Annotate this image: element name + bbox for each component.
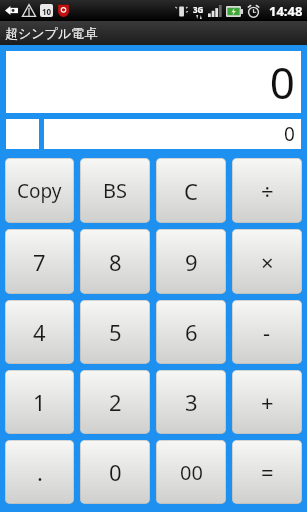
- button[interactable]: 5: [80, 300, 150, 364]
- staticText: 4: [33, 317, 46, 347]
- staticText: 0: [269, 52, 295, 112]
- button[interactable]: 8: [80, 229, 150, 294]
- staticText: 5: [109, 317, 122, 347]
- staticText: BS: [103, 177, 127, 204]
- button[interactable]: -: [232, 300, 302, 364]
- button[interactable]: C: [156, 158, 226, 223]
- staticText: Copy: [17, 178, 62, 204]
- staticText: ÷: [261, 176, 274, 206]
- button[interactable]: ×: [232, 229, 302, 294]
- staticText: 10: [42, 6, 52, 17]
- staticText: 1: [33, 387, 46, 417]
- button[interactable]: 7: [5, 229, 74, 294]
- button[interactable]: +: [232, 370, 302, 434]
- button[interactable]: ÷: [232, 158, 302, 223]
- staticText: 超シンプル電卓: [5, 25, 98, 41]
- staticText: .: [37, 457, 43, 487]
- staticText: 6: [185, 317, 198, 347]
- button[interactable]: Copy: [5, 158, 74, 223]
- button[interactable]: 0: [80, 440, 150, 504]
- staticText: 7: [33, 247, 46, 277]
- staticText: 8: [109, 247, 122, 277]
- staticText: 9: [185, 247, 198, 277]
- button[interactable]: 4: [5, 300, 74, 364]
- staticText: -: [263, 317, 271, 347]
- button[interactable]: =: [232, 440, 302, 504]
- staticText: 2: [109, 387, 122, 417]
- staticText: =: [261, 457, 274, 487]
- staticText: 3G: [193, 4, 204, 15]
- button[interactable]: 9: [156, 229, 226, 294]
- staticText: 14:48: [269, 2, 303, 20]
- button[interactable]: .: [5, 440, 74, 504]
- staticText: +: [261, 387, 274, 417]
- button[interactable]: 6: [156, 300, 226, 364]
- staticText: C: [184, 176, 198, 206]
- button[interactable]: BS: [80, 158, 150, 223]
- button[interactable]: 1: [5, 370, 74, 434]
- staticText: 3: [185, 387, 198, 417]
- button[interactable]: 3: [156, 370, 226, 434]
- button[interactable]: 2: [80, 370, 150, 434]
- staticText: 0: [284, 121, 295, 147]
- button[interactable]: 00: [156, 440, 226, 504]
- staticText: ×: [261, 247, 274, 277]
- staticText: 0: [109, 457, 122, 487]
- staticText: 00: [180, 459, 203, 486]
